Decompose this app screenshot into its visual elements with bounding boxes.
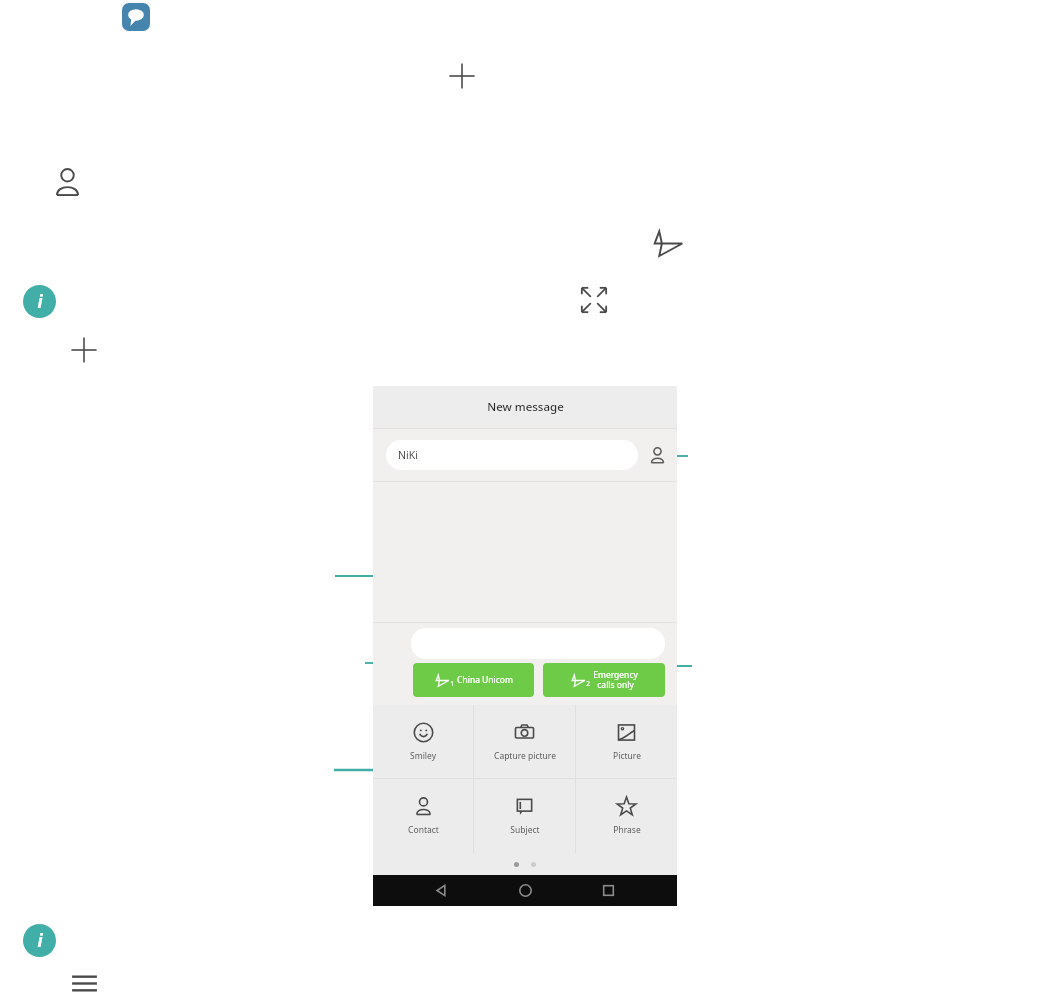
staticText: NiKi <box>398 448 418 462</box>
staticText: 2 <box>586 679 590 688</box>
button[interactable]: Send <box>652 227 685 260</box>
button[interactable]: Expand <box>578 284 610 316</box>
staticText: Subject <box>510 824 540 836</box>
staticText: China Unicom <box>457 674 513 686</box>
button[interactable]: Messaging app <box>122 3 150 31</box>
button[interactable]: Information <box>23 285 56 318</box>
button[interactable]: Information <box>23 924 56 957</box>
button[interactable]: Add <box>69 335 99 365</box>
staticText: Phrase <box>613 824 641 836</box>
button[interactable]: Pick contact <box>648 446 667 465</box>
staticText: New message <box>487 399 564 415</box>
button[interactable]: Contact <box>51 166 84 199</box>
button[interactable]: Picture <box>576 705 677 778</box>
button[interactable]: 1 <box>413 663 534 697</box>
button[interactable]: Add <box>447 61 477 91</box>
button[interactable]: NiKi <box>386 440 638 470</box>
button[interactable]: Contact <box>373 779 473 853</box>
button[interactable]: Back <box>426 875 457 906</box>
button[interactable]: Phrase <box>576 779 677 853</box>
button[interactable]: Smiley <box>373 705 473 778</box>
staticText: Emergency calls only <box>593 669 638 691</box>
staticText: i <box>37 929 43 952</box>
button[interactable]: Subject <box>474 779 575 853</box>
staticText: Picture <box>613 750 641 762</box>
staticText: Smiley <box>410 750 436 762</box>
staticText: Contact <box>408 824 439 836</box>
button[interactable]: Recents <box>593 875 624 906</box>
button[interactable]: Menu <box>69 968 100 998</box>
staticText: i <box>37 290 43 313</box>
staticText: 1 <box>450 679 454 688</box>
button[interactable]: Capture picture <box>474 705 575 778</box>
button[interactable]: Home <box>510 875 541 906</box>
staticText: Capture picture <box>494 750 556 762</box>
button[interactable]: 2 <box>543 663 665 697</box>
